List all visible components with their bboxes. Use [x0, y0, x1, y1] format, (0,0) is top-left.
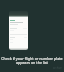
- button[interactable]: [10, 20, 27, 25]
- staticText: Check if your flight or number plate app…: [1, 56, 63, 65]
- button[interactable]: [10, 37, 27, 40]
- staticText: archive: [53, 66, 62, 70]
- button[interactable]: [10, 28, 27, 31]
